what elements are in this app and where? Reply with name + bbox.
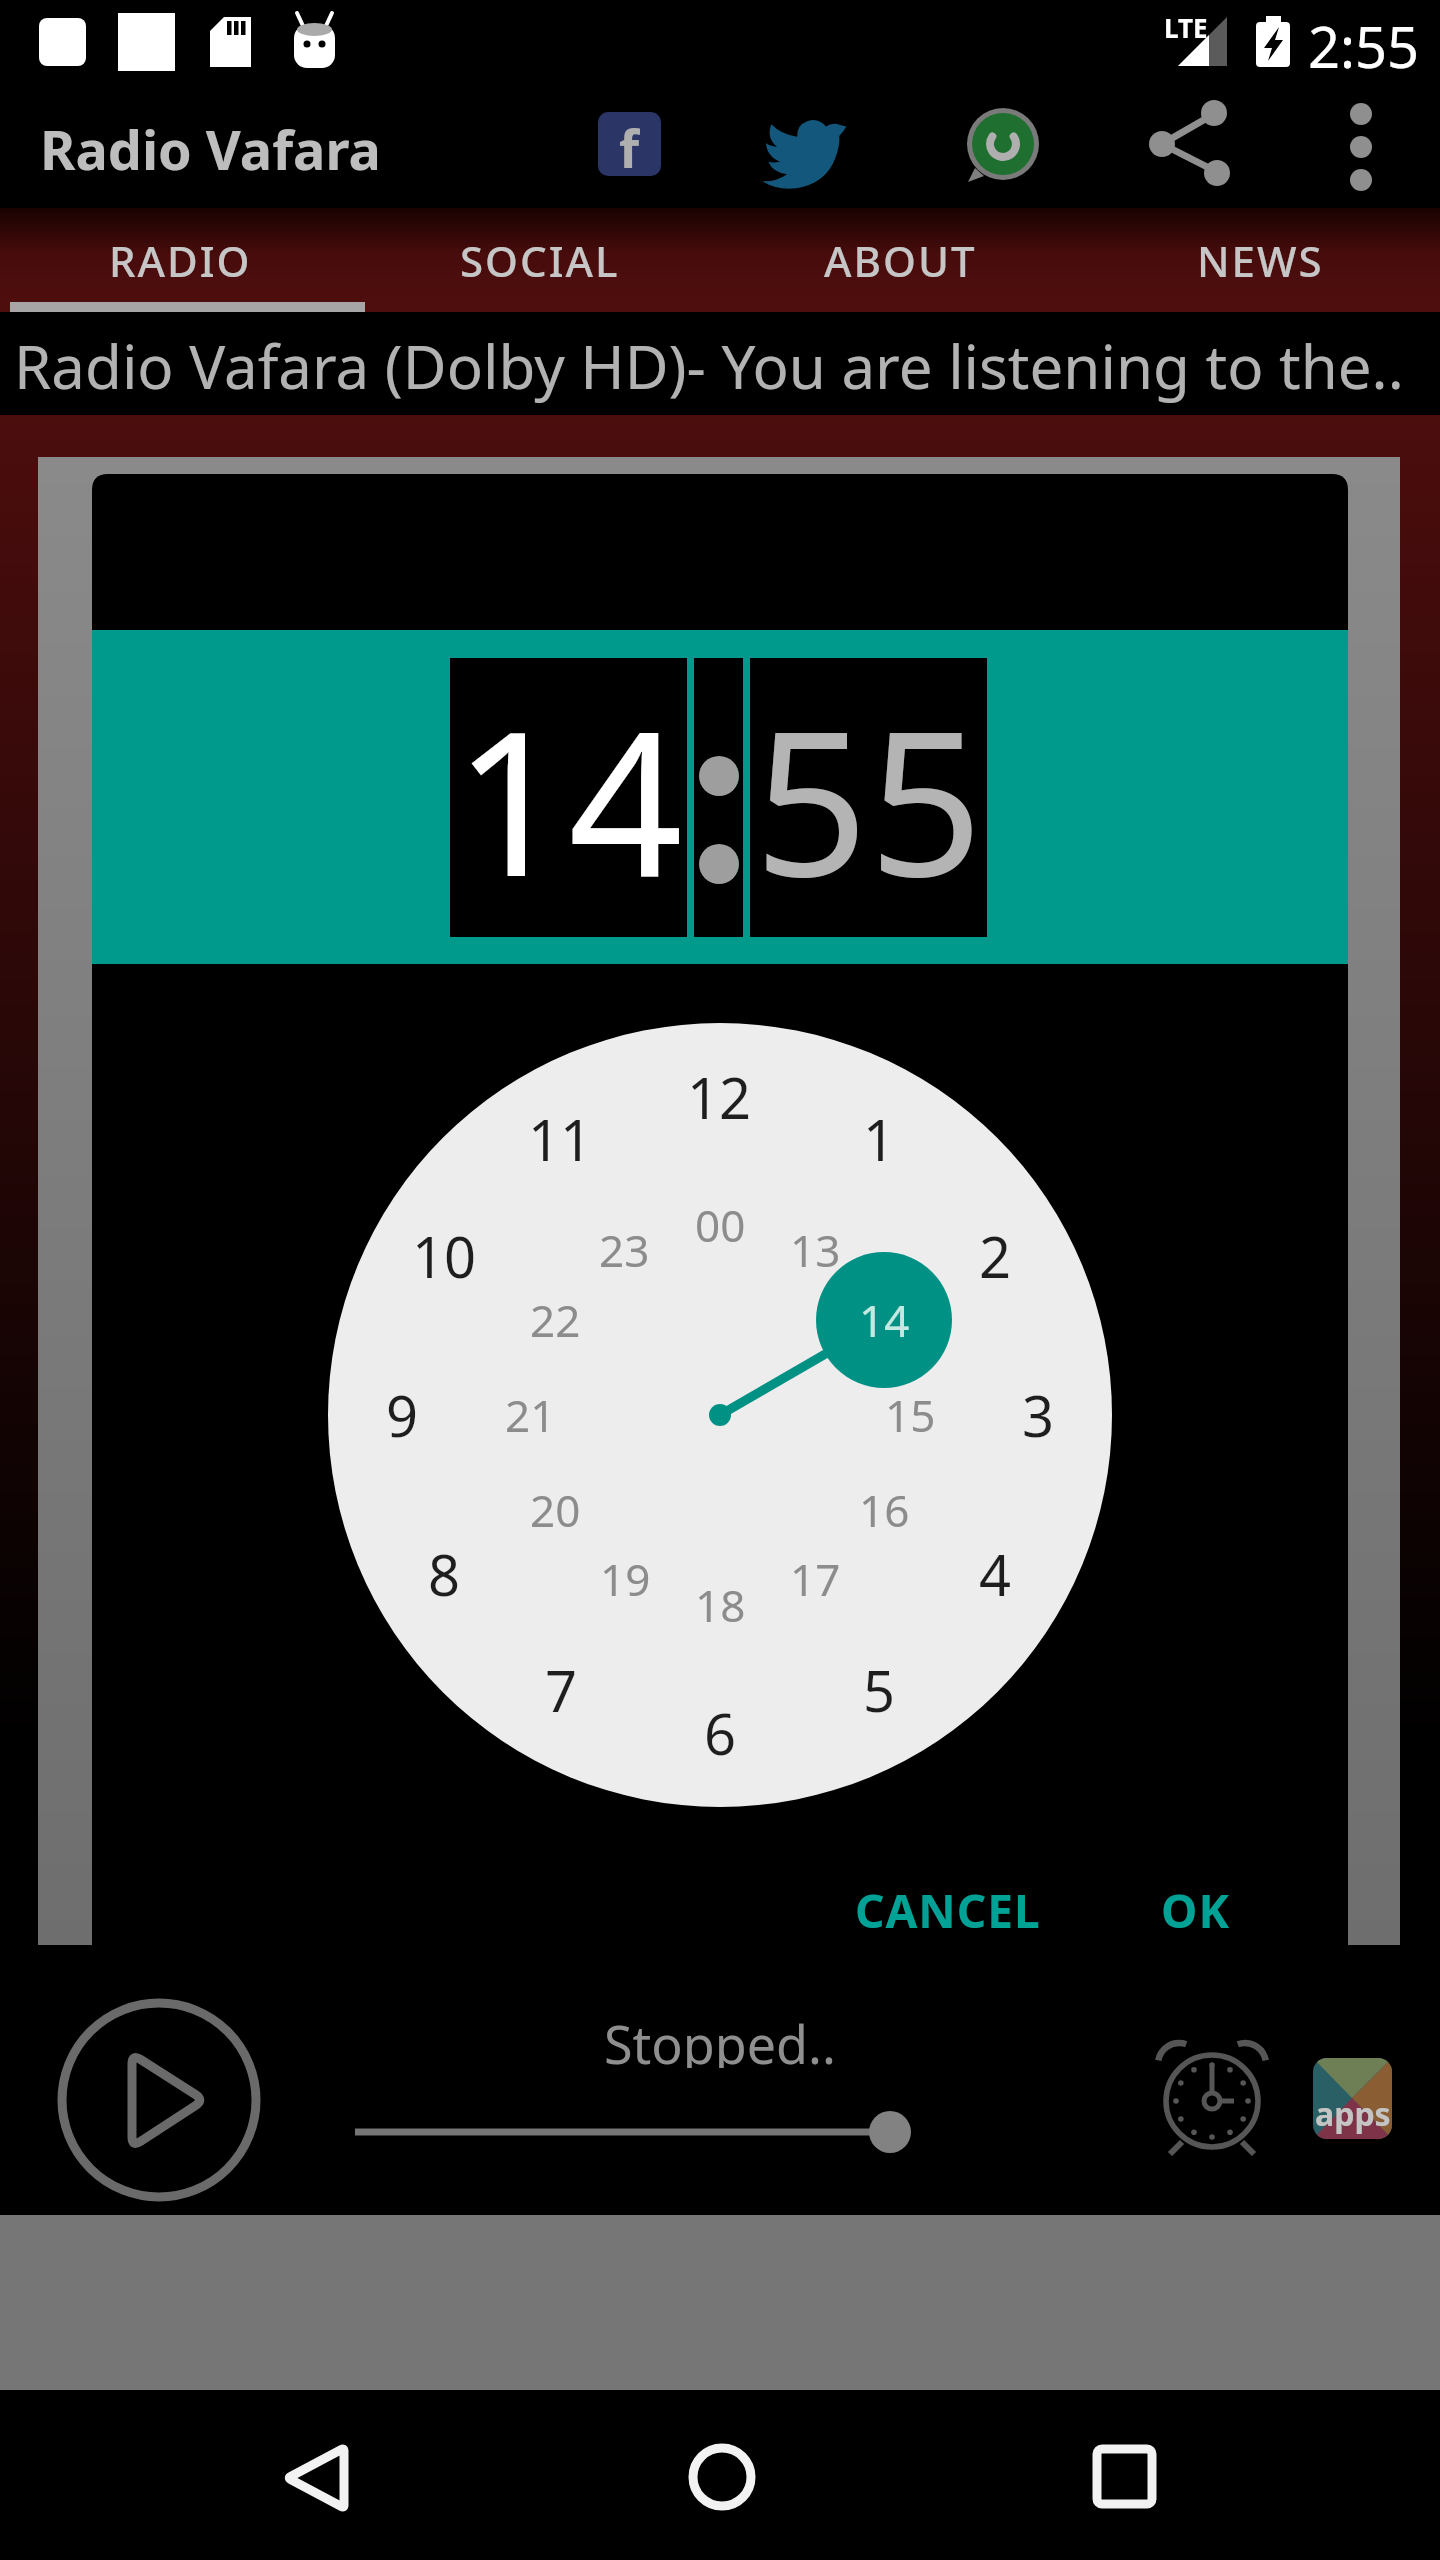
button[interactable] — [640, 2410, 800, 2550]
staticText: 00 — [695, 1195, 746, 1255]
button[interactable] — [1330, 95, 1395, 195]
button[interactable]: CANCEL — [830, 1870, 1066, 1950]
staticText: LTE — [1164, 10, 1208, 42]
staticText: Radio Vafara (Dolby HD)- You are listeni… — [14, 325, 1404, 407]
staticText: 16 — [859, 1480, 910, 1540]
staticText: 23 — [599, 1220, 650, 1280]
staticText: RADIO — [109, 232, 252, 289]
staticText: SOCIAL — [460, 232, 620, 289]
staticText: 10 — [412, 1218, 477, 1294]
staticText: 1 — [863, 1101, 896, 1177]
button[interactable] — [1045, 2410, 1205, 2550]
staticText: 18 — [695, 1575, 746, 1635]
button[interactable] — [1140, 100, 1235, 190]
button[interactable]: RADIO — [0, 208, 360, 312]
staticText: 55 — [754, 662, 983, 934]
staticText: 2 — [979, 1218, 1012, 1294]
staticText: 14 — [454, 662, 683, 934]
button[interactable]: OK — [1130, 1870, 1260, 1950]
staticText: NEWS — [1197, 232, 1324, 289]
staticText: 21 — [505, 1385, 556, 1445]
staticText: 20 — [530, 1480, 581, 1540]
button[interactable] — [590, 100, 670, 185]
staticText: 12 — [687, 1059, 752, 1135]
staticText: 5 — [863, 1652, 896, 1728]
staticText: ABOUT — [824, 232, 977, 289]
staticText: 15 — [885, 1385, 936, 1445]
button[interactable] — [1155, 2044, 1270, 2159]
button[interactable]: SOCIAL — [360, 208, 720, 312]
staticText: 8 — [428, 1536, 461, 1612]
button[interactable] — [1313, 2058, 1392, 2139]
button[interactable] — [60, 2001, 260, 2201]
button[interactable]: ABOUT — [720, 208, 1080, 312]
button[interactable] — [755, 100, 855, 185]
staticText: 19 — [600, 1549, 651, 1609]
staticText: 7 — [545, 1652, 578, 1728]
staticText: 13 — [790, 1220, 841, 1280]
staticText: 2:55 — [1308, 8, 1420, 78]
staticText: OK — [1161, 1879, 1230, 1942]
button[interactable] — [340, 2100, 920, 2165]
staticText: Stopped.. — [604, 2008, 836, 2068]
staticText: Radio Vafara — [40, 112, 381, 184]
staticText: 14 — [859, 1290, 910, 1350]
staticText: 4 — [979, 1536, 1012, 1612]
staticText: f — [619, 112, 640, 174]
button[interactable] — [240, 2410, 400, 2550]
staticText: 3 — [1022, 1377, 1055, 1453]
staticText: 9 — [386, 1377, 419, 1453]
staticText: 17 — [790, 1549, 841, 1609]
staticText: 11 — [528, 1101, 593, 1177]
staticText: apps — [1315, 2092, 1391, 2136]
button[interactable]: NEWS — [1080, 208, 1440, 312]
staticText: 6 — [704, 1695, 737, 1771]
staticText: 22 — [530, 1290, 581, 1350]
staticText: CANCEL — [855, 1879, 1041, 1942]
button[interactable] — [960, 100, 1050, 190]
